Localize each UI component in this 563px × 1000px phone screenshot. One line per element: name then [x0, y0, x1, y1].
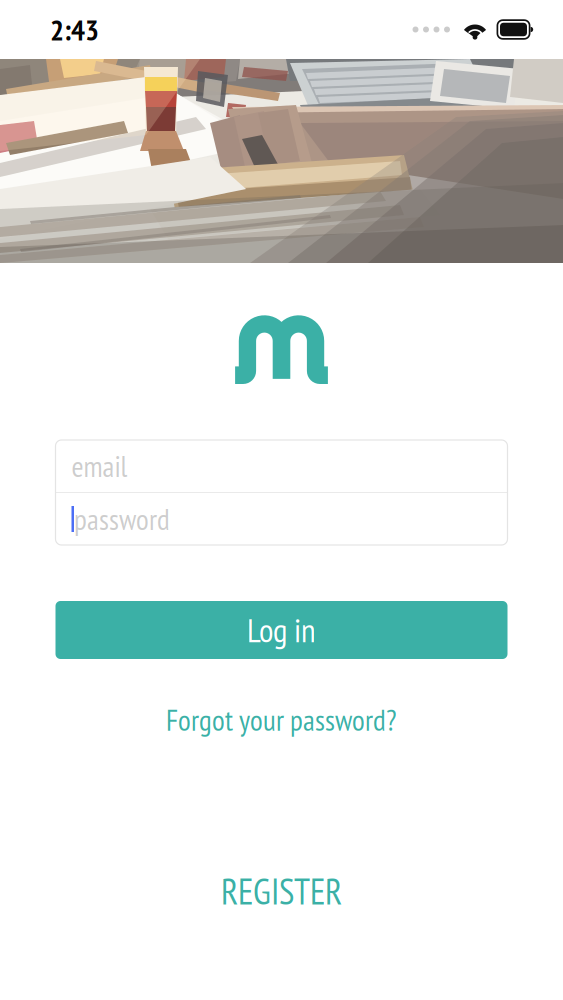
staticText: password [74, 500, 170, 538]
button[interactable]: password [55, 493, 507, 545]
button[interactable]: REGISTER [221, 868, 342, 915]
button[interactable]: email [55, 440, 507, 492]
button[interactable]: Log in [55, 601, 507, 659]
staticText: email [71, 447, 127, 485]
staticText: 2:43 [50, 10, 99, 48]
staticText: REGISTER [221, 868, 342, 915]
staticText: Forgot your password? [166, 701, 397, 739]
button[interactable]: Forgot your password? [166, 701, 397, 739]
staticText: Log in [247, 608, 316, 651]
